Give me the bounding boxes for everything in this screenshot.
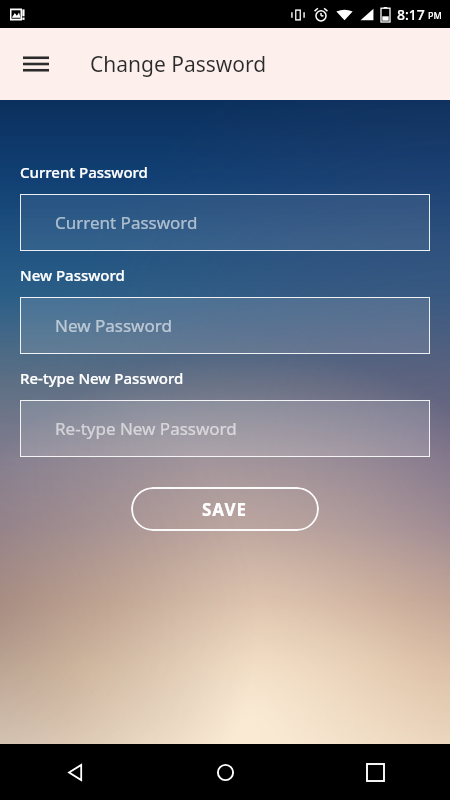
button[interactable]: Home: [150, 744, 300, 800]
button[interactable]: New Password: [20, 297, 430, 354]
staticText: Re-type New Password: [55, 417, 237, 440]
staticText: PM: [428, 9, 442, 21]
staticText: Change Password: [90, 50, 267, 79]
staticText: SAVE: [202, 498, 248, 521]
button[interactable]: Back: [0, 744, 150, 800]
staticText: Re-type New Password: [20, 368, 184, 388]
button[interactable]: Recent apps: [300, 744, 450, 800]
staticText: Current Password: [55, 211, 198, 234]
button[interactable]: SAVE: [131, 487, 319, 531]
staticText: New Password: [20, 265, 125, 285]
staticText: Current Password: [20, 162, 148, 182]
button[interactable]: Current Password: [20, 194, 430, 251]
button[interactable]: Re-type New Password: [20, 400, 430, 457]
button[interactable]: Open navigation menu: [10, 38, 62, 90]
staticText: New Password: [55, 314, 172, 337]
staticText: 8:17: [397, 5, 425, 24]
